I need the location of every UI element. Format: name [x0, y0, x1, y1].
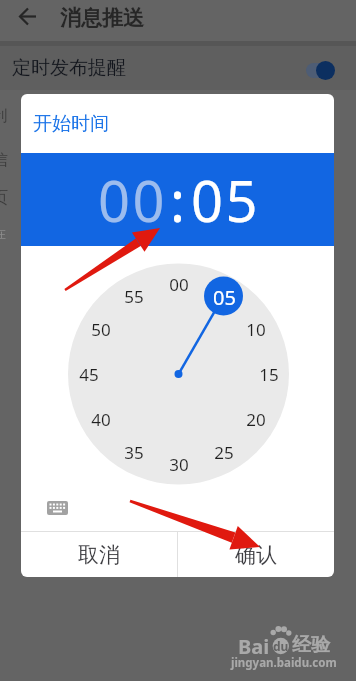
staticText: 40: [91, 408, 111, 431]
staticText: 开始时间: [33, 112, 109, 136]
staticText: 45: [79, 363, 99, 386]
staticText: 消息推送: [60, 5, 144, 31]
staticText: 05: [213, 284, 236, 308]
staticText: 取消: [78, 542, 120, 568]
staticText: 页: [0, 188, 8, 206]
staticText: 55: [124, 285, 144, 308]
button[interactable]: [12, 6, 44, 30]
staticText: 35: [124, 441, 144, 464]
staticText: 50: [91, 318, 111, 341]
button[interactable]: 取消: [21, 532, 177, 577]
staticText: du: [273, 638, 289, 654]
staticText: Bai: [238, 633, 270, 657]
staticText: 在: [0, 226, 6, 240]
staticText: 25: [214, 441, 234, 464]
staticText: 利: [0, 106, 8, 124]
staticText: :: [170, 162, 186, 238]
staticText: 信: [0, 150, 8, 168]
staticText: 经验: [292, 633, 330, 657]
staticText: 确认: [235, 542, 277, 568]
staticText: 定时发布提醒: [12, 56, 126, 80]
staticText: jingyan.baidu.com: [231, 655, 337, 671]
staticText: 00: [169, 273, 189, 296]
staticText: 10: [246, 318, 266, 341]
staticText: 00: [98, 162, 168, 238]
staticText: 05: [191, 162, 261, 238]
staticText: 20: [246, 408, 266, 431]
staticText: 30: [169, 453, 189, 476]
staticText: 15: [259, 363, 279, 386]
button[interactable]: 确认: [178, 532, 334, 577]
button[interactable]: [41, 497, 73, 519]
button[interactable]: 定时发布提醒: [0, 46, 356, 90]
